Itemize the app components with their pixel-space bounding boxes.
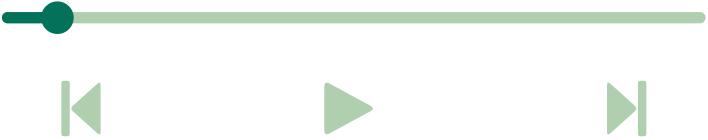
button[interactable]: Skip to beginning — [61, 81, 101, 136]
button[interactable]: Play — [324, 81, 375, 136]
button[interactable]: Skip to end — [607, 81, 646, 136]
button[interactable]: Playback position — [0, 0, 708, 44]
